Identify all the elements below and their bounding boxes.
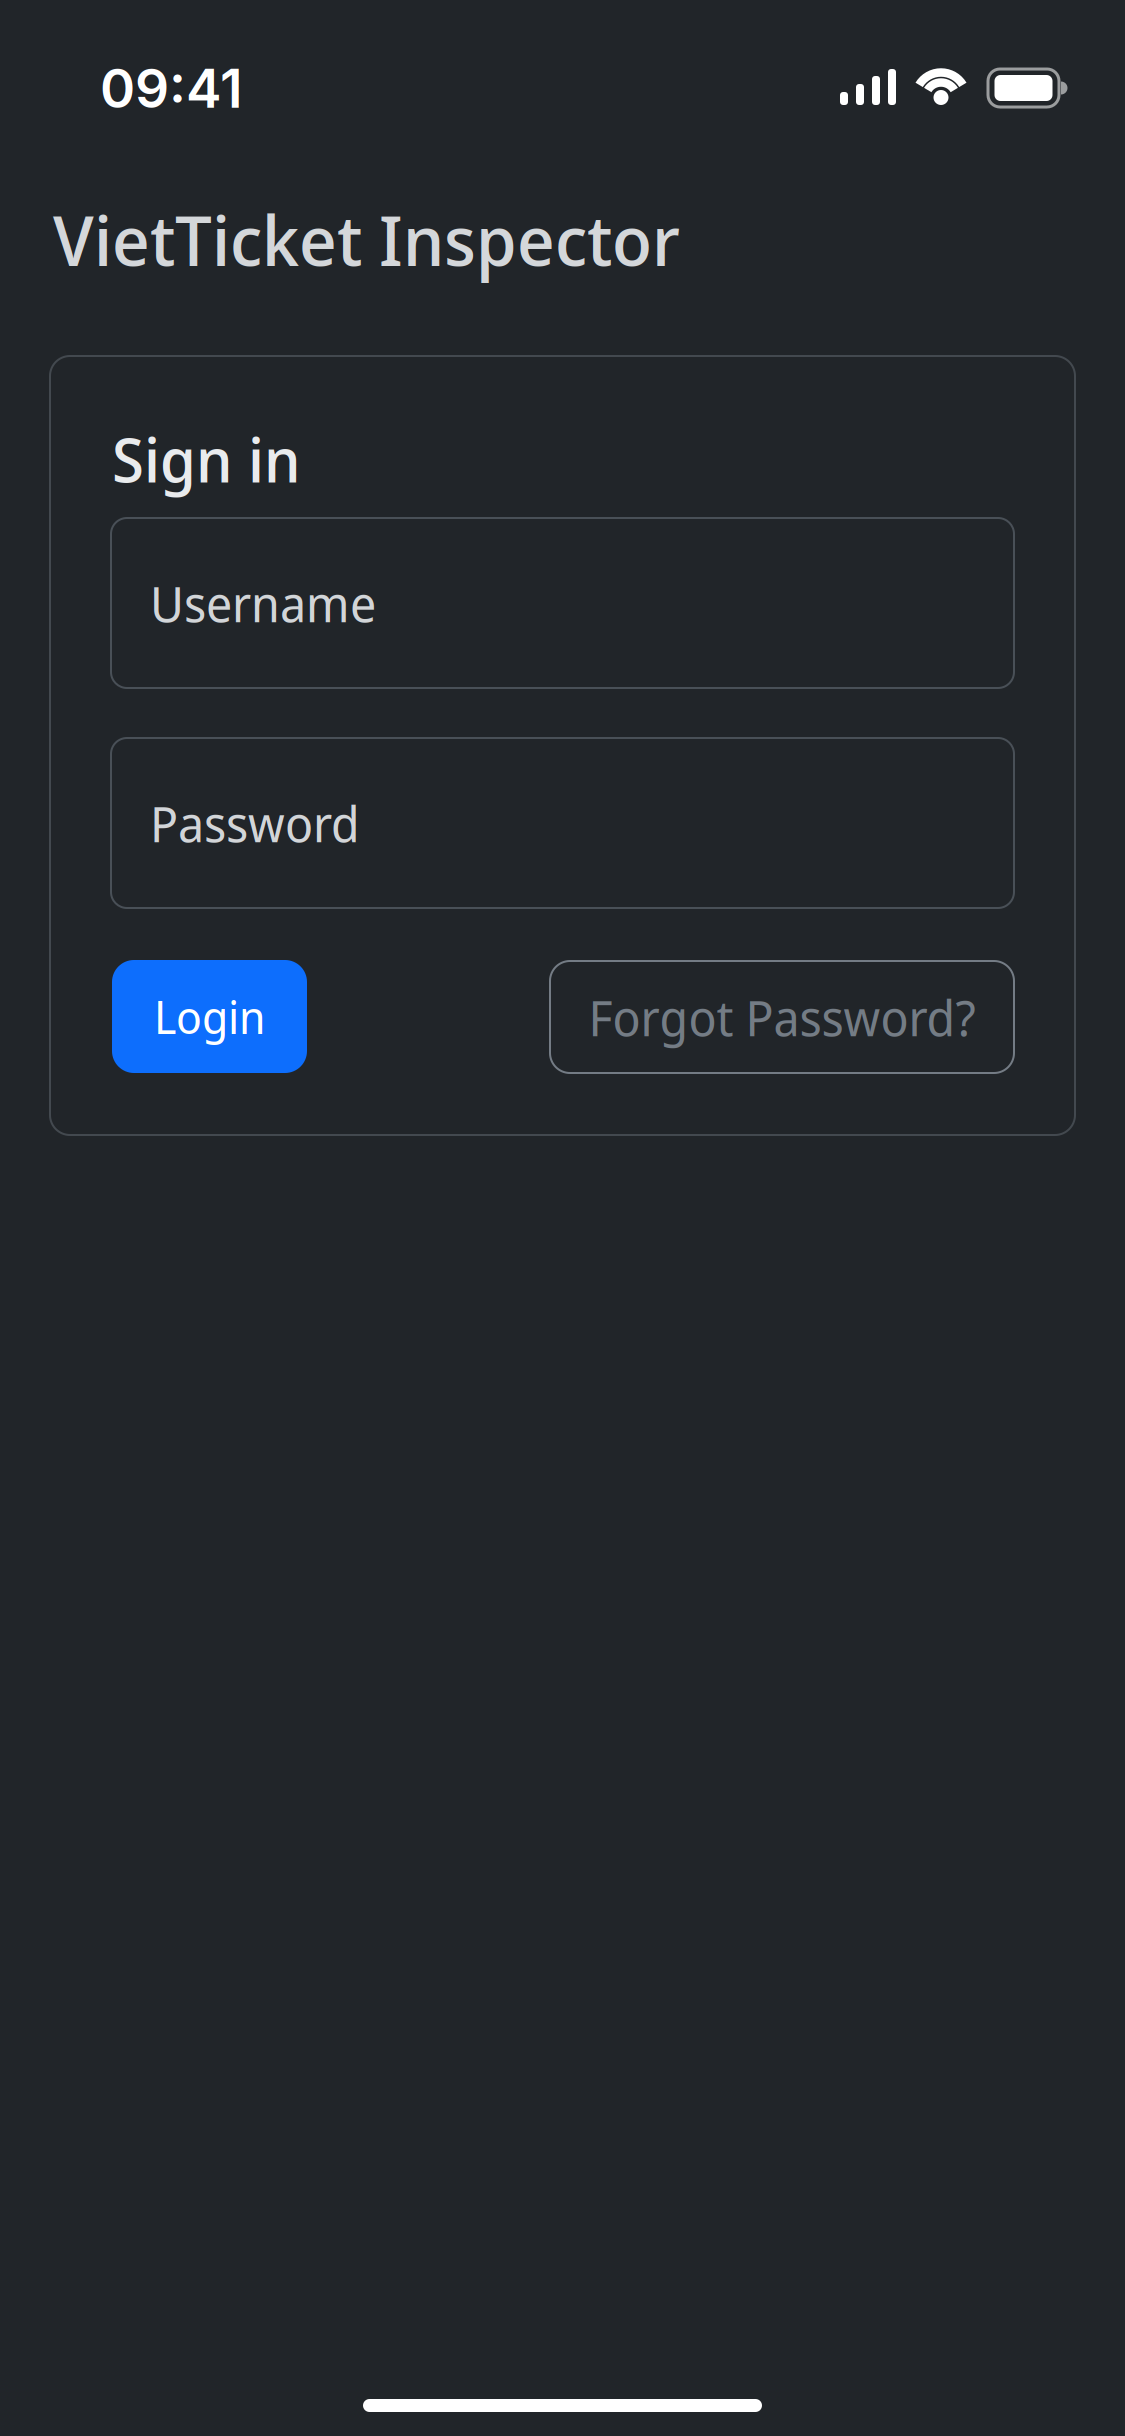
staticText: Login [154,986,265,1047]
button[interactable]: Password [111,738,1014,908]
staticText: Password [150,789,360,857]
staticText: 09:41 [100,56,243,120]
button[interactable]: Login [112,960,307,1073]
staticText: Forgot Password? [588,983,975,1051]
staticText: Sign in [112,417,301,500]
staticText: Username [150,569,376,637]
staticText: VietTicket Inspector [53,192,680,286]
button[interactable]: Username [111,518,1014,688]
button[interactable]: Forgot Password? [550,961,1014,1073]
